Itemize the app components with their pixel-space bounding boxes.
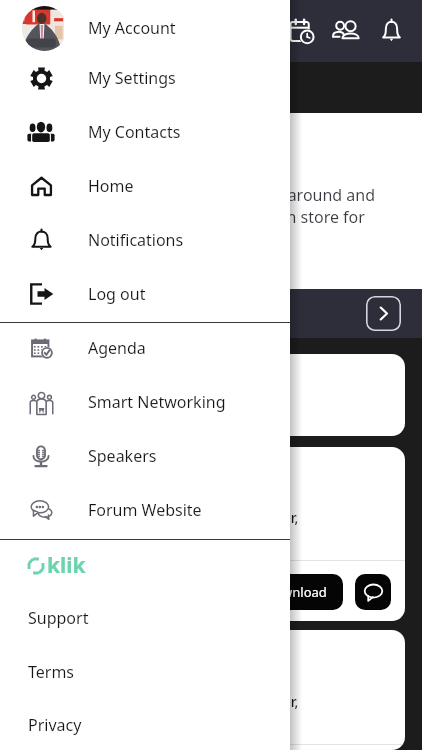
staticText: Speakers — [88, 445, 157, 467]
button[interactable]: My Account — [0, 1, 290, 55]
button[interactable]: Chat — [355, 574, 391, 610]
staticText: Notifications — [88, 229, 184, 251]
staticText: Privacy — [28, 714, 82, 736]
staticText: Support — [28, 607, 89, 629]
button[interactable]: Agenda — [0, 321, 290, 375]
staticText: Take a look around and see what's in sto… — [200, 184, 376, 250]
button[interactable]: Contacts — [326, 11, 366, 51]
button[interactable]: Log out — [0, 267, 290, 321]
button[interactable]: Download — [249, 574, 343, 610]
button[interactable]: Next — [366, 296, 401, 331]
button[interactable]: Notifications — [371, 11, 411, 51]
button[interactable]: Home — [0, 159, 290, 213]
button[interactable]: My Contacts — [0, 105, 290, 159]
button[interactable]: Forum Website — [0, 483, 290, 537]
button[interactable]: Notifications — [0, 213, 290, 267]
button[interactable]: My Settings — [0, 51, 290, 105]
button[interactable]: Support — [0, 591, 290, 645]
staticText: My Account — [88, 17, 176, 39]
staticText: Log out — [88, 283, 146, 305]
staticText: My Contacts — [88, 121, 181, 143]
staticText: Home — [88, 175, 134, 197]
button[interactable]: Terms — [0, 645, 290, 699]
staticText: Agenda — [88, 337, 146, 359]
staticText: Download — [265, 583, 327, 601]
staticText: My Settings — [88, 67, 176, 89]
staticText: klik — [47, 551, 86, 580]
staticText: Lorem ipsum dolor sit amet, consecteer, — [31, 692, 299, 711]
button[interactable]: klik — [0, 543, 290, 587]
button[interactable]: Speakers — [0, 429, 290, 483]
staticText: Terms — [28, 661, 75, 683]
button[interactable]: Smart Networking — [0, 375, 290, 429]
button[interactable]: Privacy — [0, 698, 290, 750]
staticText: Smart Networking — [88, 391, 226, 413]
staticText: Forum Website — [88, 499, 202, 521]
staticText: Lorem ipsum dolor sit amet, consecteer, — [31, 508, 299, 527]
button[interactable]: Agenda — [282, 11, 322, 51]
